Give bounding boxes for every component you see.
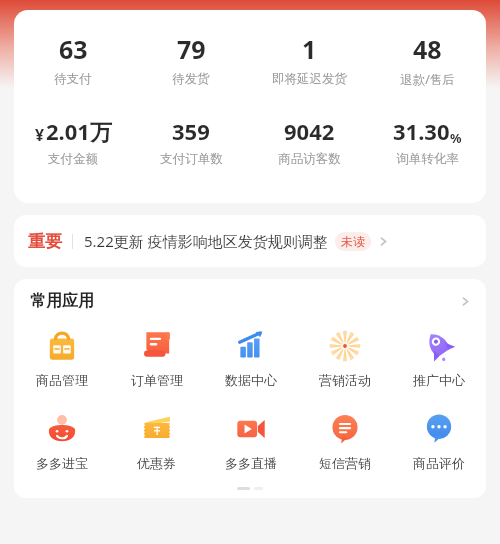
staticText: 5.22更新 疫情影响地区发货规则调整 — [84, 231, 328, 251]
staticText: 48 — [413, 32, 442, 66]
button[interactable]: 营销活动 — [298, 323, 392, 392]
staticText: 退款/售后 — [400, 71, 455, 88]
staticText: 63 — [59, 32, 88, 66]
staticText: 商品评价 — [413, 455, 465, 471]
button[interactable]: 359 — [132, 116, 250, 167]
staticText: 营销活动 — [319, 372, 371, 388]
staticText: 1 — [302, 32, 317, 66]
staticText: 数据中心 — [225, 372, 277, 388]
staticText: ¥ — [35, 124, 45, 146]
staticText: 支付订单数 — [160, 151, 223, 167]
staticText: 2.01万 — [46, 116, 112, 146]
button[interactable]: 订单管理 — [109, 323, 204, 392]
button[interactable]: 多多进宝 — [14, 406, 109, 475]
button[interactable]: 优惠券 — [109, 406, 204, 475]
button[interactable]: 推广中心 — [392, 323, 486, 392]
button[interactable]: 商品管理 — [14, 323, 109, 392]
button[interactable]: ¥ — [14, 116, 132, 167]
staticText: 即将延迟发货 — [272, 71, 347, 87]
button[interactable]: 商品评价 — [392, 406, 486, 475]
button[interactable]: 48 — [368, 32, 486, 88]
button[interactable]: 数据中心 — [204, 323, 298, 392]
staticText: 重要 — [28, 231, 62, 252]
button[interactable]: 79 — [132, 32, 250, 87]
staticText: 多多进宝 — [36, 455, 88, 471]
staticText: 商品访客数 — [278, 151, 341, 167]
other: More — [377, 235, 390, 248]
button[interactable]: 常用应用 — [14, 279, 486, 323]
button[interactable]: 短信营销 — [298, 406, 392, 475]
staticText: 待发货 — [172, 71, 210, 87]
staticText: 9042 — [284, 116, 335, 146]
staticText: 79 — [177, 32, 206, 66]
staticText: 优惠券 — [137, 455, 176, 471]
staticText: 商品管理 — [36, 372, 88, 388]
button[interactable]: 重要 — [14, 215, 486, 267]
staticText: % — [450, 129, 462, 146]
staticText: 多多直播 — [225, 455, 277, 471]
staticText: 未读 — [341, 234, 365, 249]
button[interactable]: 63 — [14, 32, 132, 87]
other: More — [459, 295, 472, 308]
staticText: 推广中心 — [413, 372, 465, 388]
staticText: 支付金额 — [48, 151, 98, 167]
button[interactable]: 31.30 — [368, 116, 486, 167]
staticText: 询单转化率 — [396, 151, 459, 167]
staticText: 31.30 — [393, 116, 450, 146]
staticText: 常用应用 — [30, 291, 94, 311]
button[interactable]: 多多直播 — [204, 406, 298, 475]
staticText: 待支付 — [54, 71, 92, 87]
staticText: 359 — [172, 116, 210, 146]
button[interactable]: 1 — [250, 32, 368, 87]
button[interactable]: 9042 — [250, 116, 368, 167]
staticText: 订单管理 — [131, 372, 183, 388]
staticText: 短信营销 — [319, 455, 371, 471]
